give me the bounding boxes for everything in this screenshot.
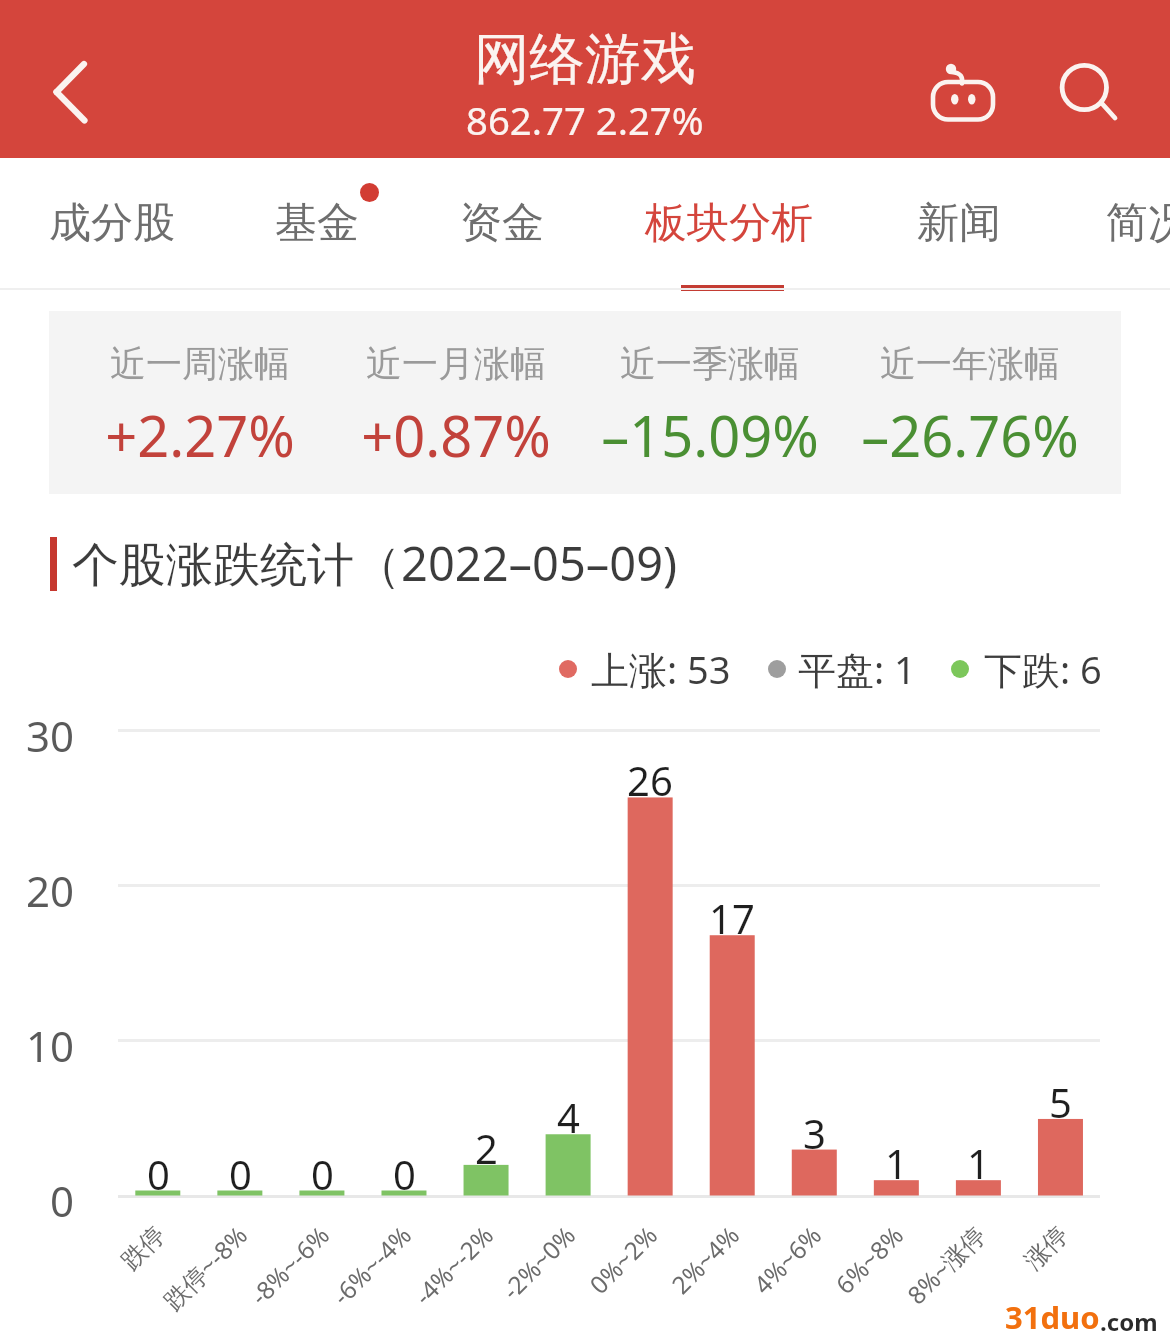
staticText: 涨停 xyxy=(1018,1219,1074,1276)
staticText: 跌停~-8% xyxy=(156,1219,254,1317)
staticText: 2%~4% xyxy=(664,1219,746,1301)
staticText: .com xyxy=(1100,1305,1158,1338)
button[interactable]: 基金 xyxy=(214,160,410,286)
staticText: 4%~6% xyxy=(746,1219,828,1301)
staticText: 下跌: 6 xyxy=(984,643,1102,695)
staticText: 近一周涨幅 xyxy=(110,341,290,386)
staticText: 网络游戏 xyxy=(474,25,696,95)
staticText: 0 xyxy=(311,1147,334,1201)
staticText: 5 xyxy=(1049,1075,1072,1129)
staticText: 板块分析 xyxy=(645,197,813,250)
staticText: 基金 xyxy=(275,197,359,250)
staticText: 17 xyxy=(709,891,755,945)
staticText: 资金 xyxy=(460,197,544,250)
staticText: –15.09% xyxy=(601,397,819,473)
staticText: 0 xyxy=(229,1147,252,1201)
staticText: 4 xyxy=(557,1090,580,1144)
staticText: 0 xyxy=(147,1147,170,1201)
staticText: 862.77 2.27% xyxy=(466,94,704,146)
button[interactable]: Assistant xyxy=(915,50,1011,134)
staticText: 2 xyxy=(475,1121,498,1175)
staticText: 31duo xyxy=(1005,1296,1100,1338)
button[interactable]: 板块分析 xyxy=(616,160,844,286)
staticText: 简况 xyxy=(1106,197,1170,250)
staticText: -4%~-2% xyxy=(407,1219,500,1312)
button[interactable]: 成分股 xyxy=(9,160,214,286)
staticText: 近一季涨幅 xyxy=(620,341,800,386)
staticText: 1 xyxy=(885,1136,908,1190)
staticText: +0.87% xyxy=(361,397,551,473)
staticText: 0 xyxy=(50,1172,75,1229)
staticText: 上涨: 53 xyxy=(591,643,731,695)
staticText: –26.76% xyxy=(861,397,1079,473)
staticText: 跌停 xyxy=(115,1219,171,1276)
staticText: 新闻 xyxy=(917,197,1001,250)
staticText: 0 xyxy=(393,1147,416,1201)
staticText: 1 xyxy=(967,1136,990,1190)
staticText: 平盘: 1 xyxy=(798,643,916,695)
staticText: 6%~8% xyxy=(828,1219,910,1301)
staticText: -6%~-4% xyxy=(325,1219,418,1312)
button[interactable]: 简况 xyxy=(1053,160,1170,286)
button[interactable]: 资金 xyxy=(410,160,616,286)
staticText: 26 xyxy=(627,753,673,807)
staticText: 20 xyxy=(26,862,75,919)
button[interactable]: Back xyxy=(20,38,116,118)
staticText: -2%~0% xyxy=(494,1219,582,1306)
staticText: 近一月涨幅 xyxy=(366,341,546,386)
staticText: 3 xyxy=(803,1106,826,1160)
staticText: 近一年涨幅 xyxy=(880,341,1060,386)
staticText: 30 xyxy=(26,707,75,764)
staticText: 8%~涨停 xyxy=(899,1219,992,1311)
staticText: 10 xyxy=(26,1017,75,1074)
button[interactable]: 新闻 xyxy=(844,160,1053,286)
staticText: +2.27% xyxy=(105,397,295,473)
staticText: 成分股 xyxy=(49,197,175,250)
staticText: 个股涨跌统计（2022–05–09) xyxy=(72,531,678,595)
staticText: -8%~-6% xyxy=(243,1219,336,1312)
button[interactable]: Search xyxy=(1050,55,1130,135)
staticText: 0%~2% xyxy=(582,1219,664,1301)
